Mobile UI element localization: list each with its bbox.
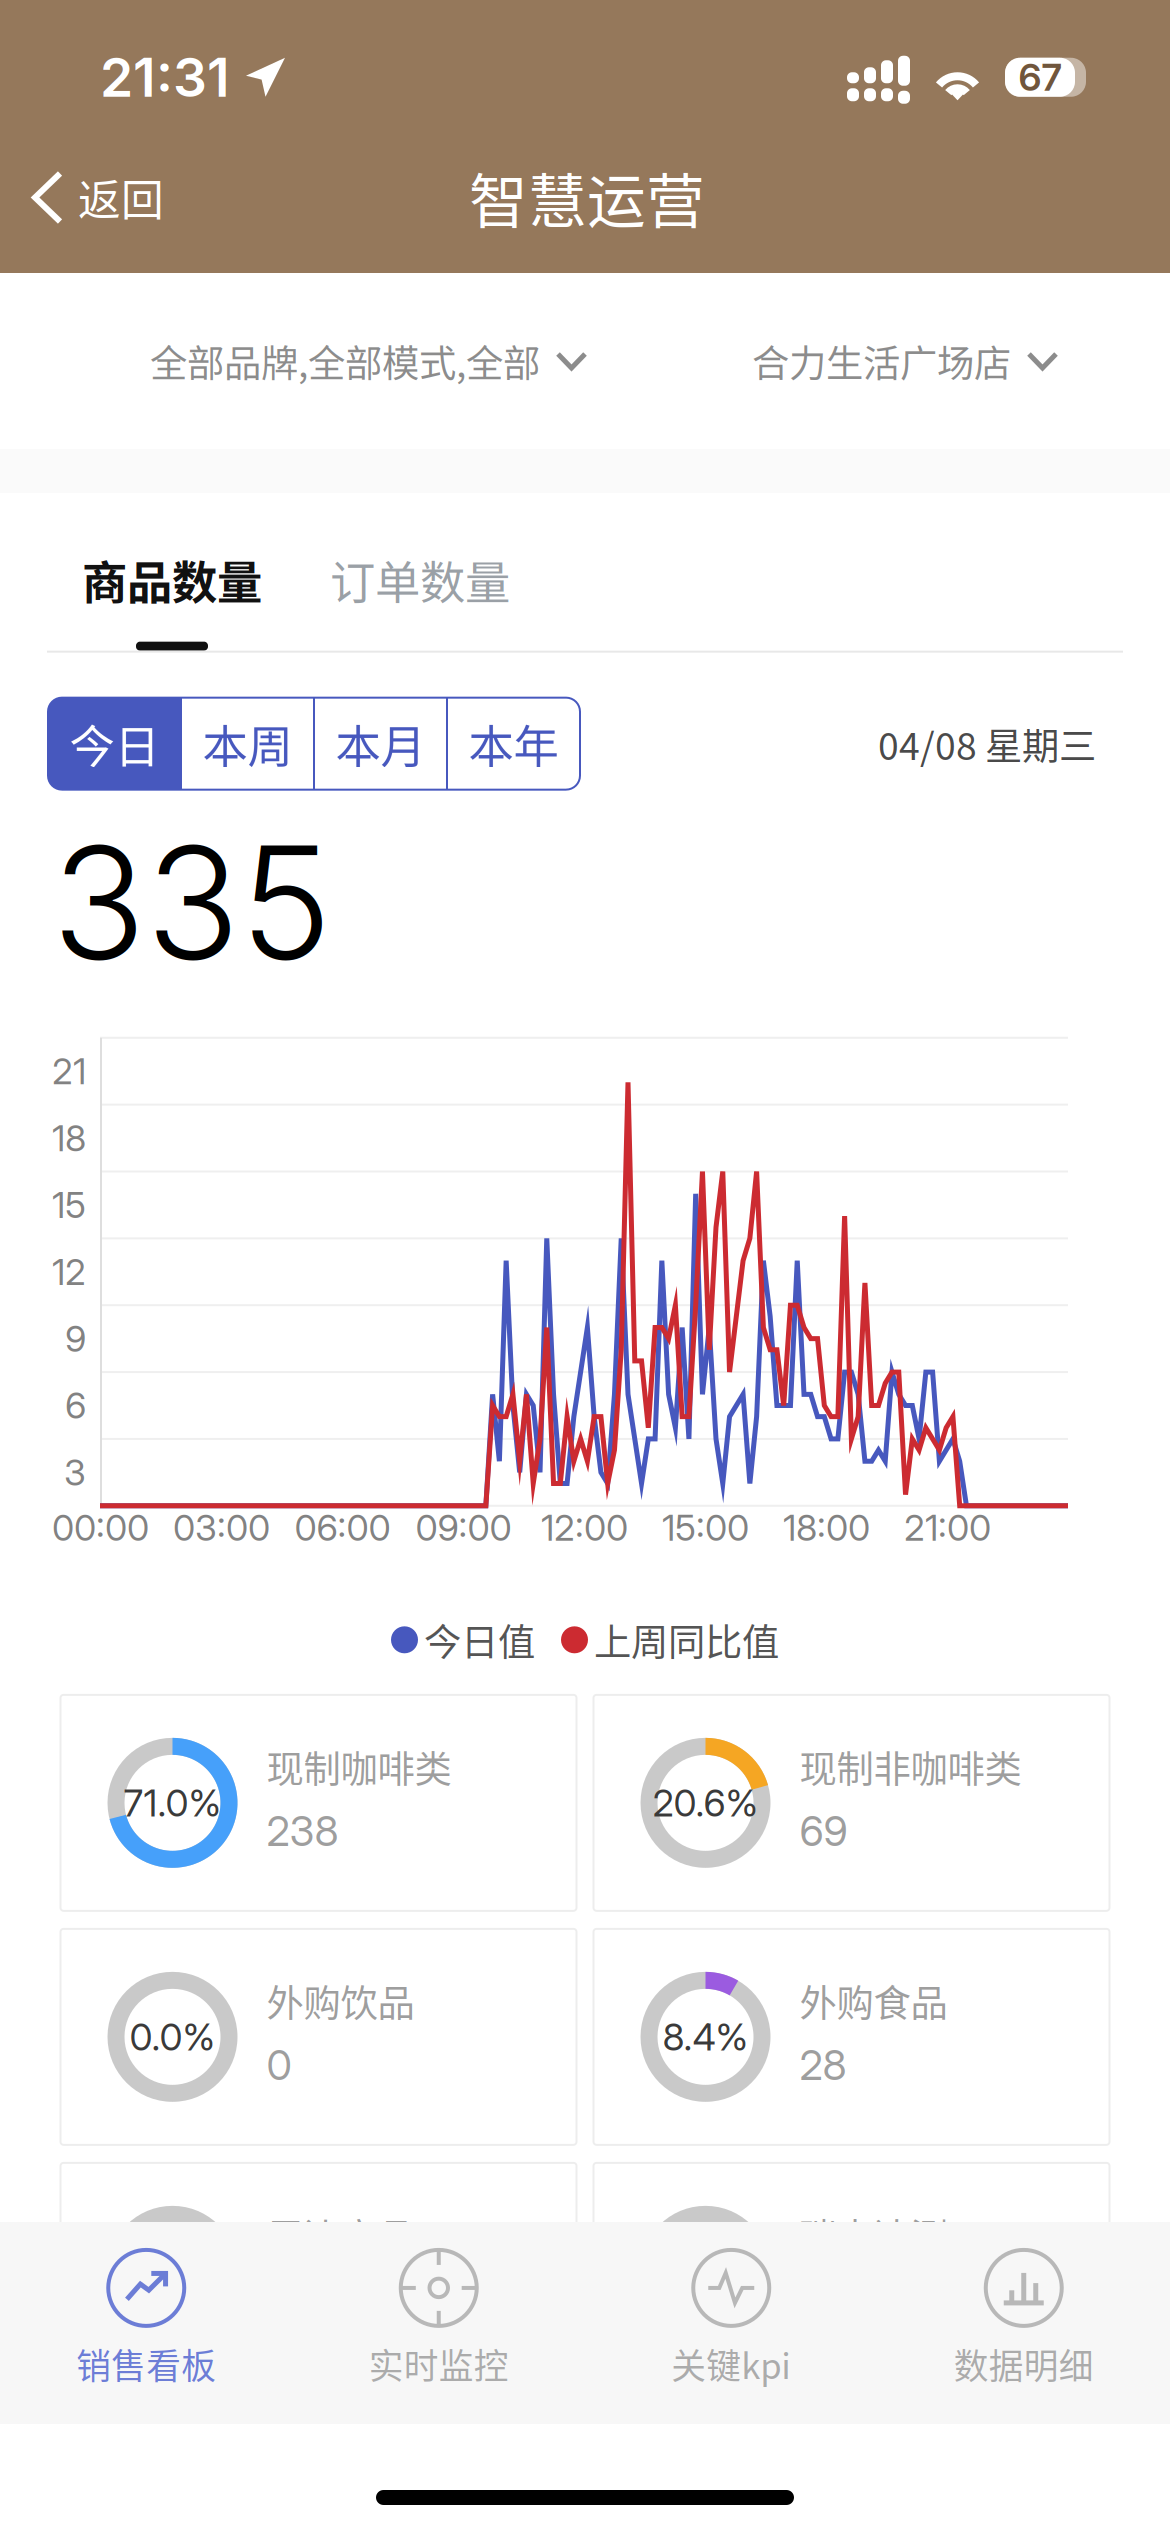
staticText: 本年 — [468, 711, 558, 776]
button[interactable]: 返回 — [0, 147, 164, 248]
button[interactable]: 商品数量 — [0, 547, 296, 651]
button[interactable]: 0.0% — [60, 2163, 576, 2379]
button[interactable]: 8.4% — [593, 1929, 1109, 2145]
staticText: 本周 — [202, 711, 292, 776]
staticText: 0.0% — [129, 2248, 215, 2293]
staticText: 销售看板 — [76, 2339, 216, 2389]
staticText: 03:00 — [173, 1506, 270, 1549]
staticText: 04/08 星期三 — [878, 717, 1096, 771]
button[interactable]: 0.0% — [60, 1929, 576, 2145]
button[interactable]: 关键kpi — [585, 2249, 877, 2389]
staticText: 关键kpi — [671, 2339, 791, 2389]
button[interactable]: 订单数量 — [296, 547, 544, 651]
staticText: 06:00 — [294, 1506, 390, 1549]
staticText: 外购饮品 — [266, 1974, 414, 2028]
staticText: 28 — [799, 2040, 846, 2090]
staticText: 0.0% — [662, 2248, 748, 2293]
button[interactable]: 数据明细 — [877, 2249, 1170, 2389]
staticText: 今日值 — [424, 1613, 535, 1667]
staticText: 18:00 — [783, 1506, 870, 1549]
staticText: 12:00 — [541, 1506, 628, 1549]
staticText: 00:00 — [52, 1506, 149, 1549]
staticText: 瑞幸达测 — [799, 2208, 947, 2262]
staticText: 智慧运营 — [469, 155, 705, 240]
staticText: 15 — [52, 1183, 86, 1227]
staticText: 数据明细 — [954, 2339, 1094, 2389]
staticText: 15:00 — [662, 1506, 749, 1549]
staticText: 21:31 — [100, 45, 230, 109]
staticText: 合力生活广场店 — [752, 334, 1011, 388]
staticText: 18 — [52, 1116, 86, 1160]
staticText: 外购食品 — [799, 1974, 947, 2028]
staticText: 0 — [266, 2040, 291, 2090]
staticText: 上周同比值 — [594, 1613, 779, 1667]
staticText: 21:00 — [904, 1506, 991, 1549]
staticText: 09:00 — [415, 1506, 511, 1549]
button[interactable]: 20.6% — [593, 1695, 1109, 1911]
staticText: 71.0% — [123, 1780, 221, 1825]
staticText: 周边商品 — [266, 2208, 414, 2262]
button[interactable]: 0.0% — [593, 2163, 1109, 2379]
staticText: 21 — [52, 1049, 86, 1093]
staticText: 订单数量 — [330, 547, 510, 613]
staticText: 12 — [52, 1250, 86, 1294]
staticText: 返回 — [78, 167, 164, 228]
staticText: 335 — [52, 809, 332, 996]
staticText: 9 — [65, 1317, 86, 1360]
button[interactable]: 今日 — [49, 698, 180, 790]
button[interactable]: 全部品牌,全部模式,全部 — [150, 312, 585, 410]
button[interactable]: 本周 — [182, 698, 313, 790]
button[interactable]: 本年 — [448, 698, 579, 790]
button[interactable]: 实时监控 — [292, 2249, 585, 2389]
button[interactable]: 本月 — [315, 698, 446, 790]
staticText: 商品数量 — [82, 547, 262, 613]
button[interactable]: 合力生活广场店 — [752, 312, 1056, 410]
staticText: 6 — [65, 1384, 86, 1427]
staticText: 今日 — [69, 711, 159, 776]
staticText: 20.6% — [652, 1780, 758, 1825]
staticText: 本月 — [335, 711, 425, 776]
button[interactable]: 71.0% — [60, 1695, 576, 1911]
staticText: 现制非咖啡类 — [799, 1740, 1021, 1794]
staticText: 实时监控 — [369, 2339, 509, 2389]
staticText: 现制咖啡类 — [266, 1740, 451, 1794]
staticText: 67 — [1018, 55, 1061, 100]
staticText: 69 — [799, 1806, 847, 1856]
staticText: 8.4% — [662, 2014, 748, 2059]
staticText: 全部品牌,全部模式,全部 — [150, 334, 540, 388]
staticText: 0.0% — [129, 2014, 215, 2059]
staticText: 238 — [266, 1806, 338, 1856]
button[interactable]: 销售看板 — [0, 2249, 292, 2389]
staticText: 3 — [64, 1451, 86, 1494]
